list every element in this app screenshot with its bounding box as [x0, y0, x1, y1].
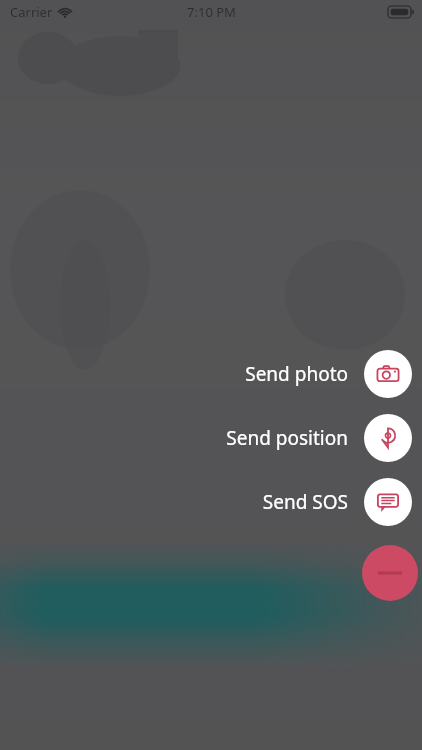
staticText: 7:10 PM — [187, 3, 236, 21]
button[interactable]: Send SOS — [260, 478, 414, 526]
staticText: Send SOS — [262, 489, 348, 515]
button[interactable]: Close menu — [362, 545, 418, 601]
button[interactable]: Send position — [224, 414, 414, 462]
staticText: Carrier — [10, 3, 53, 21]
staticText: Send position — [226, 425, 348, 451]
staticText: Send photo — [245, 361, 348, 387]
button[interactable]: Send photo — [243, 350, 414, 398]
